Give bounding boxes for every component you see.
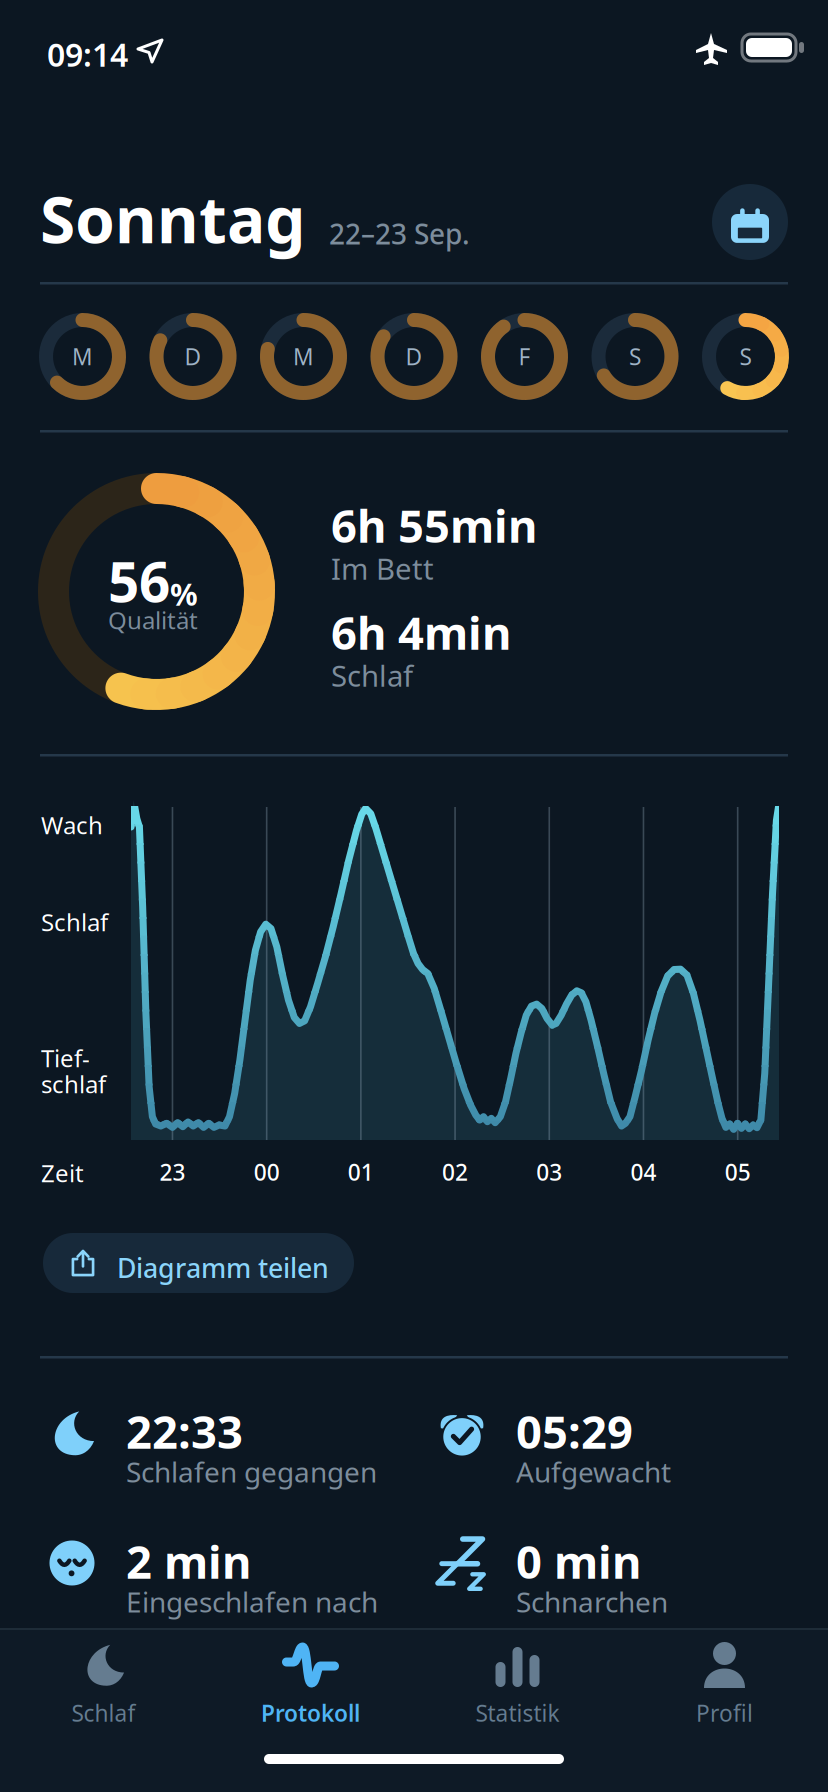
staticText: 6h 55min — [331, 495, 537, 555]
staticText: 04 — [630, 1157, 656, 1187]
staticText: Schlafen gegangen — [126, 1453, 377, 1490]
staticText: M — [293, 341, 314, 371]
staticText: Schnarchen — [516, 1583, 668, 1620]
staticText: 56 — [108, 545, 170, 617]
staticText: Zeit — [41, 1157, 84, 1189]
staticText: schlaf — [41, 1068, 106, 1100]
staticText: 02 — [442, 1157, 468, 1187]
staticText: Eingeschlafen nach — [126, 1583, 378, 1620]
button[interactable]: 0 min — [440, 1529, 820, 1619]
staticText: 05 — [725, 1157, 751, 1187]
button[interactable]: S — [702, 313, 789, 400]
staticText: % — [170, 574, 198, 614]
staticText: 00 — [254, 1157, 280, 1187]
staticText: Schlaf — [71, 1698, 135, 1728]
button[interactable]: M — [39, 313, 126, 400]
staticText: 22:33 — [126, 1401, 243, 1461]
button[interactable]: Diagramm teilen — [43, 1233, 354, 1293]
button[interactable]: Schlaf — [0, 1630, 207, 1738]
staticText: M — [72, 341, 93, 371]
button[interactable]: D — [370, 313, 457, 400]
staticText: D — [405, 341, 422, 371]
button[interactable]: D — [149, 313, 236, 400]
staticText: Aufgewacht — [516, 1453, 671, 1490]
button[interactable]: S — [591, 313, 678, 400]
staticText: Diagramm teilen — [117, 1250, 329, 1285]
staticText: Profil — [696, 1698, 753, 1728]
staticText: S — [739, 341, 751, 371]
staticText: Im Bett — [331, 549, 434, 588]
staticText: 2 min — [126, 1531, 251, 1591]
staticText: Schlaf — [331, 656, 413, 695]
staticText: 03 — [536, 1157, 562, 1187]
button[interactable]: Statistik — [414, 1630, 621, 1738]
staticText: S — [629, 341, 641, 371]
staticText: Qualität — [108, 604, 198, 636]
button[interactable]: 2 min — [50, 1529, 430, 1619]
staticText: Statistik — [475, 1698, 559, 1728]
button[interactable]: F — [481, 313, 568, 400]
staticText: Protokoll — [261, 1698, 360, 1728]
staticText: Sonntag — [40, 176, 305, 261]
button[interactable]: 05:29 — [440, 1399, 820, 1489]
staticText: 05:29 — [516, 1401, 633, 1461]
button[interactable]: Kalender — [712, 184, 788, 260]
button[interactable]: 22:33 — [50, 1399, 430, 1489]
staticText: Schlaf — [41, 906, 108, 938]
staticText: F — [518, 341, 530, 371]
staticText: 22–23 Sep. — [329, 215, 470, 252]
staticText: 09:14 — [47, 33, 128, 75]
button[interactable]: Protokoll — [207, 1630, 414, 1738]
staticText: D — [184, 341, 201, 371]
staticText: 6h 4min — [331, 602, 511, 662]
staticText: 0 min — [516, 1531, 641, 1591]
staticText: 23 — [159, 1157, 185, 1187]
staticText: 01 — [348, 1157, 374, 1187]
staticText: Wach — [41, 809, 103, 841]
button[interactable]: Profil — [621, 1630, 828, 1738]
button[interactable]: M — [260, 313, 347, 400]
staticText: Tief- — [41, 1042, 90, 1074]
